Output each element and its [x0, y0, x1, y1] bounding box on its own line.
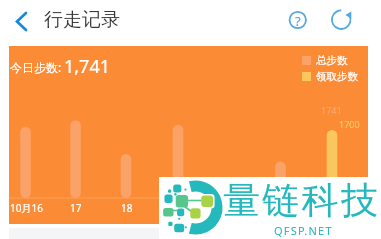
staticText: 1741	[321, 104, 342, 116]
button[interactable]: Refresh	[327, 4, 359, 36]
staticText: 领取步数	[316, 70, 358, 83]
staticText: 18	[121, 201, 133, 215]
staticText: 1700	[339, 118, 360, 130]
staticText: 20	[224, 201, 236, 215]
staticText: 行走记录	[44, 8, 120, 32]
staticText: 1,741	[64, 54, 111, 79]
staticText: 17	[70, 201, 82, 215]
staticText: 10月16	[10, 201, 43, 215]
staticText: 19	[173, 201, 185, 215]
staticText: 今日步数:	[10, 59, 62, 75]
staticText: 总步数	[316, 54, 348, 67]
staticText: 量链科技	[223, 177, 381, 224]
button[interactable]: Help	[282, 4, 314, 36]
button[interactable]: Back	[5, 5, 37, 37]
staticText: ?	[295, 12, 301, 30]
staticText: 22	[327, 201, 339, 215]
staticText: QFSP.NET	[274, 223, 333, 238]
staticText: 21	[275, 201, 287, 215]
